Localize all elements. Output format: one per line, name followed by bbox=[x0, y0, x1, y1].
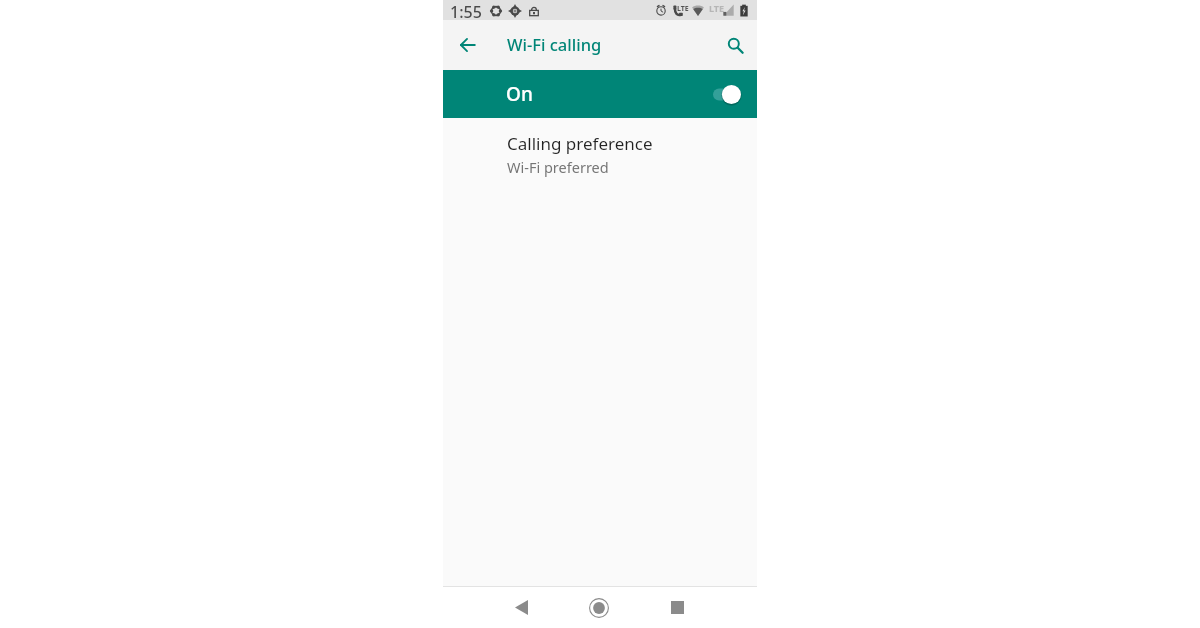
staticText: 1:55 bbox=[450, 1, 482, 21]
staticText: Calling preference bbox=[507, 132, 653, 155]
button[interactable]: Back bbox=[493, 587, 549, 628]
staticText: Wi-Fi preferred bbox=[507, 157, 609, 177]
staticText: On bbox=[506, 81, 533, 107]
button[interactable]: Recent apps bbox=[649, 587, 705, 628]
button[interactable]: On bbox=[443, 70, 757, 118]
button[interactable]: Search bbox=[715, 25, 755, 65]
staticText: LTE bbox=[677, 4, 689, 14]
button[interactable]: Calling preference bbox=[443, 118, 757, 190]
button[interactable]: Navigate up bbox=[448, 25, 488, 65]
staticText: Wi-Fi calling bbox=[507, 33, 602, 55]
button[interactable]: Home bbox=[571, 587, 627, 628]
staticText: LTE bbox=[709, 2, 725, 14]
